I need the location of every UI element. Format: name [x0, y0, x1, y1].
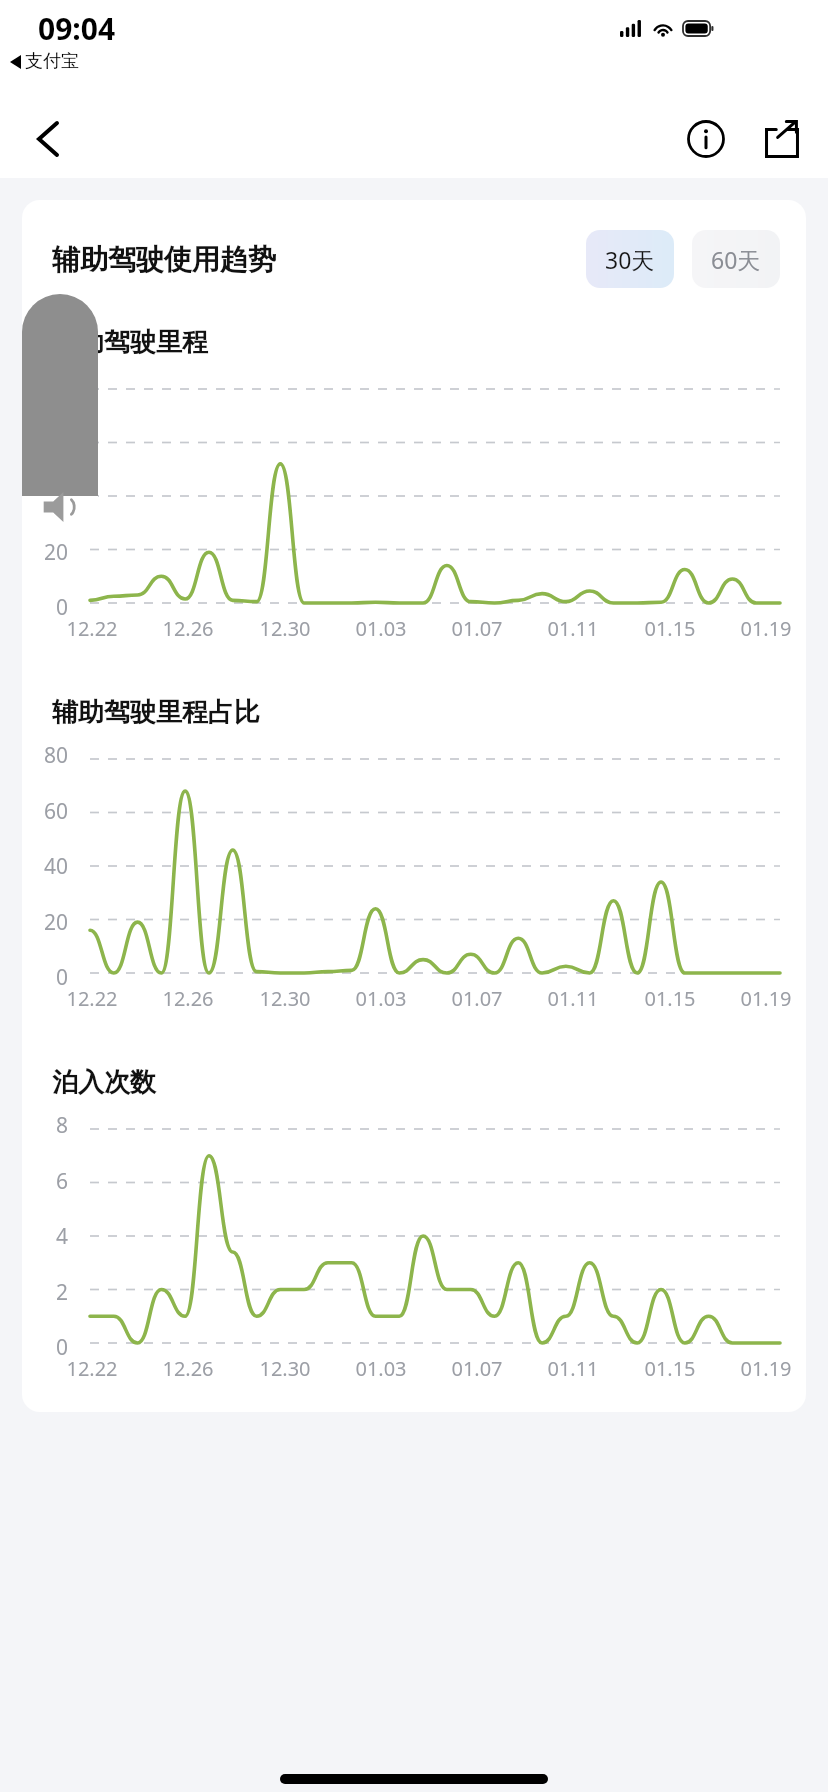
staticText: 辅助驾驶里程占比 — [52, 696, 260, 729]
staticText: 01.07 — [443, 1355, 511, 1382]
staticText: 12.22 — [58, 615, 126, 642]
staticText: 01.19 — [732, 615, 800, 642]
button[interactable]: 60天 — [692, 230, 780, 288]
staticText: 泊入次数 — [52, 1066, 156, 1099]
staticText: 0 — [22, 1333, 68, 1362]
staticText: 60 — [22, 797, 68, 826]
staticText: 40 — [22, 482, 68, 511]
staticText: 60天 — [711, 244, 761, 275]
staticText: 12.22 — [58, 985, 126, 1012]
staticText: 12.30 — [251, 615, 319, 642]
staticText: 30天 — [605, 244, 655, 275]
staticText: 12.22 — [58, 1355, 126, 1382]
staticText: 01.03 — [347, 615, 415, 642]
button[interactable]: Info — [676, 109, 736, 169]
staticText: 01.15 — [636, 1355, 704, 1382]
staticText: 01.15 — [636, 615, 704, 642]
staticText: 12.26 — [154, 1355, 222, 1382]
staticText: 辅助驾驶里程 — [52, 326, 208, 359]
staticText: 80 — [22, 741, 68, 770]
button[interactable]: Share — [752, 109, 812, 169]
staticText: 01.15 — [636, 985, 704, 1012]
staticText: 01.11 — [539, 615, 607, 642]
button[interactable]: Back — [18, 109, 78, 169]
staticText: 01.07 — [443, 985, 511, 1012]
staticText: 01.03 — [347, 1355, 415, 1382]
staticText: 01.11 — [539, 985, 607, 1012]
staticText: 01.19 — [732, 1355, 800, 1382]
staticText: 40 — [22, 852, 68, 881]
staticText: 20 — [22, 908, 68, 937]
staticText: 01.07 — [443, 615, 511, 642]
staticText: 01.11 — [539, 1355, 607, 1382]
staticText: 12.26 — [154, 615, 222, 642]
button[interactable]: 30天 — [586, 230, 674, 288]
staticText: 0 — [22, 593, 68, 622]
staticText: 01.19 — [732, 985, 800, 1012]
staticText: 12.30 — [251, 1355, 319, 1382]
staticText: 2 — [22, 1278, 68, 1307]
staticText: 6 — [22, 1167, 68, 1196]
staticText: 支付宝 — [25, 50, 79, 73]
staticText: 09:04 — [38, 8, 116, 49]
staticText: 4 — [22, 1222, 68, 1251]
staticText: 20 — [22, 538, 68, 567]
staticText: 0 — [22, 963, 68, 992]
staticText: 辅助驾驶使用趋势 — [52, 242, 276, 277]
staticText: 8 — [22, 1111, 68, 1140]
staticText: 01.03 — [347, 985, 415, 1012]
staticText: 12.30 — [251, 985, 319, 1012]
staticText: 12.26 — [154, 985, 222, 1012]
